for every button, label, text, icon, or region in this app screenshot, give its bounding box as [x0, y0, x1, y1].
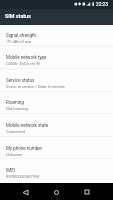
staticText: CDMA - EvDo rev. B: [6, 61, 40, 66]
staticText: Signal strength: [6, 33, 37, 38]
staticText: Service status: [6, 78, 35, 83]
button[interactable]: Home: [47, 183, 65, 200]
staticText: Unknown: [6, 152, 23, 157]
button[interactable]: Back: [16, 183, 34, 200]
staticText: -75 dBm 0 asu: [6, 39, 32, 44]
staticText: IMEI: [6, 168, 15, 173]
staticText: SIM status: [5, 13, 31, 19]
button[interactable]: Mobile network type: [0, 47, 113, 70]
button[interactable]: Roaming: [0, 92, 113, 115]
staticText: Mobile network type: [6, 55, 47, 60]
button[interactable]: Mobile network state: [0, 115, 113, 138]
button[interactable]: My phone number: [0, 138, 113, 161]
button[interactable]: Recents: [78, 183, 96, 200]
staticText: Not roaming: [6, 106, 28, 111]
button[interactable]: Service status: [0, 70, 113, 93]
staticText: Voice: In service / Data: In service: [6, 84, 65, 89]
staticText: My phone number: [6, 146, 43, 151]
button[interactable]: IMEI: [0, 160, 113, 183]
staticText: 990002341867994: [6, 174, 40, 179]
staticText: Mobile network state: [6, 123, 49, 128]
staticText: Connected: [6, 129, 25, 134]
staticText: 22:23: [96, 2, 108, 8]
button[interactable]: Signal strength: [0, 25, 113, 48]
staticText: Roaming: [6, 100, 24, 105]
